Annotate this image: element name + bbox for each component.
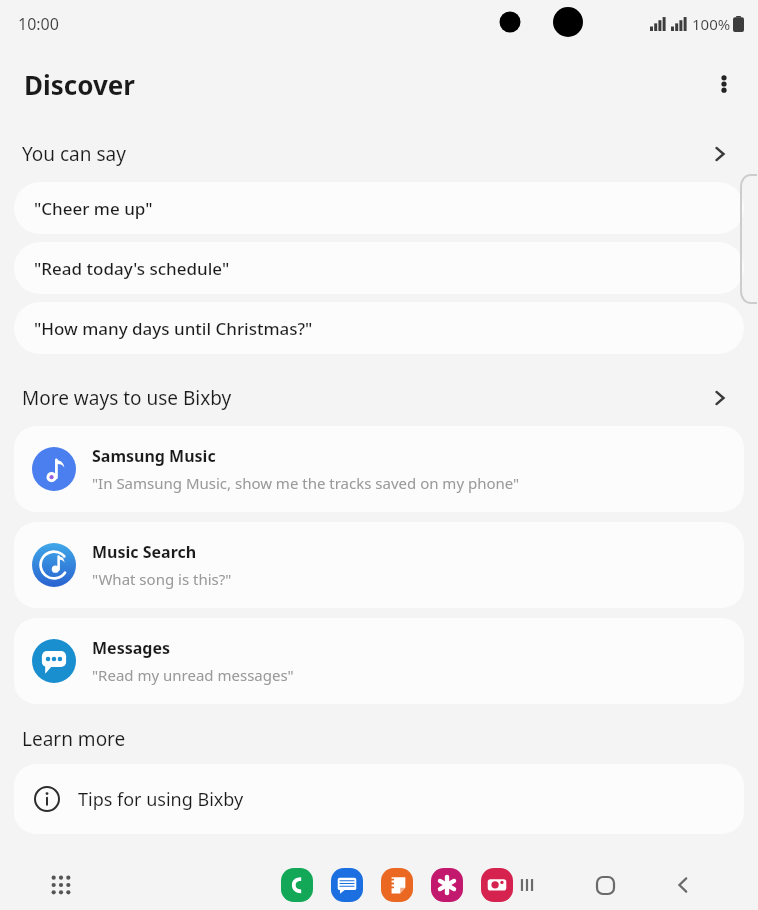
button[interactable]: You can say: [0, 134, 758, 174]
button[interactable]: Messages: [330, 868, 364, 902]
button[interactable]: Notes: [380, 868, 414, 902]
staticText: Learn more: [22, 726, 126, 752]
button[interactable]: "Cheer me up": [14, 182, 744, 234]
staticText: Messages: [92, 637, 170, 659]
staticText: "Read today's schedule": [34, 257, 230, 280]
button[interactable]: Phone: [280, 868, 314, 902]
button[interactable]: Home: [588, 868, 622, 902]
staticText: More ways to use Bixby: [22, 385, 232, 411]
button[interactable]: Back: [666, 868, 700, 902]
button[interactable]: Samsung Music: [14, 426, 744, 512]
button[interactable]: "How many days until Christmas?": [14, 302, 744, 354]
staticText: 10:00: [18, 13, 59, 35]
button[interactable]: More options: [700, 60, 748, 108]
staticText: "In Samsung Music, show me the tracks sa…: [92, 473, 520, 493]
button[interactable]: Camera: [480, 868, 514, 902]
staticText: "Cheer me up": [34, 197, 153, 220]
button[interactable]: Gallery: [430, 868, 464, 902]
button[interactable]: Music Search: [14, 522, 744, 608]
staticText: 100%: [692, 14, 731, 34]
staticText: Tips for using Bixby: [78, 787, 244, 812]
staticText: You can say: [22, 141, 126, 167]
button[interactable]: "Read today's schedule": [14, 242, 744, 294]
staticText: Samsung Music: [92, 445, 216, 467]
button[interactable]: Tips for using Bixby: [14, 764, 744, 834]
staticText: "Read my unread messages": [92, 665, 294, 685]
staticText: Music Search: [92, 541, 197, 563]
staticText: "What song is this?": [92, 569, 232, 589]
button[interactable]: Apps: [44, 868, 78, 902]
button[interactable]: Recents: [510, 868, 544, 902]
staticText: "How many days until Christmas?": [34, 317, 313, 340]
button[interactable]: More ways to use Bixby: [0, 378, 758, 418]
staticText: Discover: [24, 67, 135, 102]
button[interactable]: Messages: [14, 618, 744, 704]
